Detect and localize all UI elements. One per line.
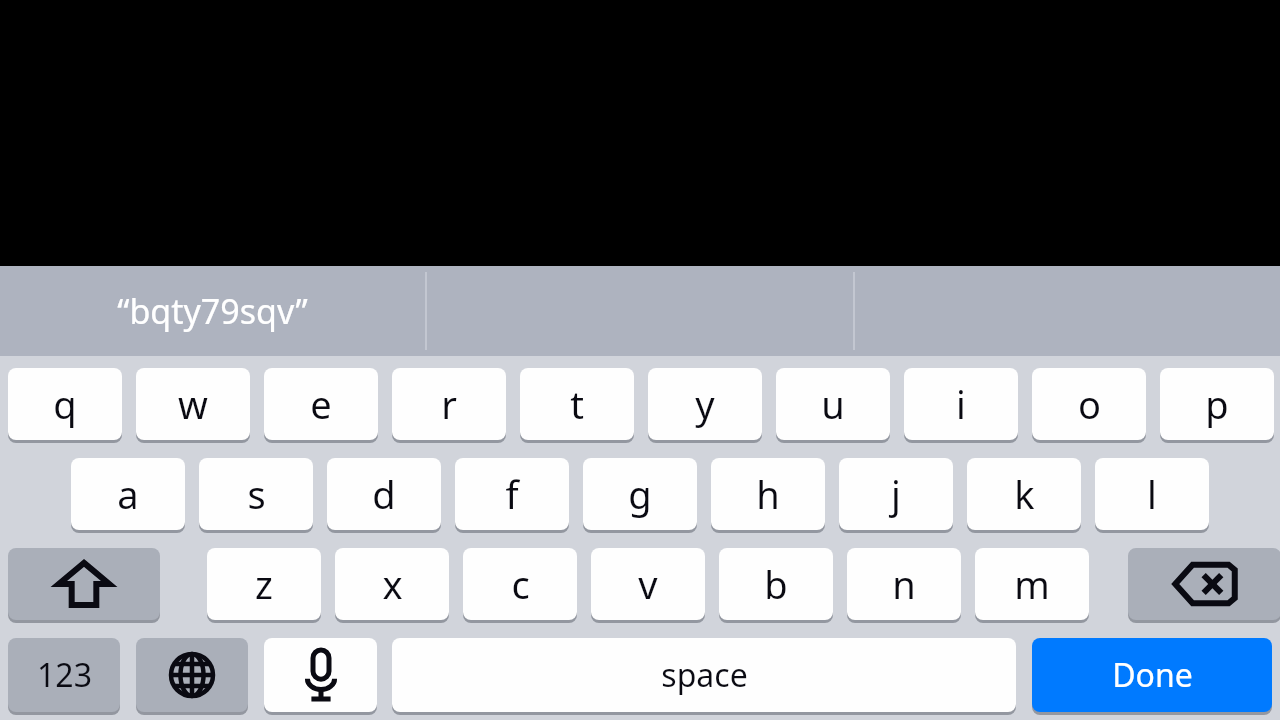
staticText: w [178, 378, 208, 430]
button[interactable]: r [392, 368, 506, 440]
button[interactable]: u [776, 368, 890, 440]
button[interactable]: space [392, 638, 1016, 712]
staticText: z [255, 558, 273, 610]
button[interactable]: s [199, 458, 313, 530]
staticText: u [821, 378, 845, 430]
button[interactable]: e [264, 368, 378, 440]
staticText: x [382, 558, 403, 610]
staticText: space [661, 653, 748, 697]
button[interactable]: v [591, 548, 705, 620]
button[interactable]: q [8, 368, 122, 440]
staticText: k [1014, 468, 1035, 520]
button[interactable]: k [967, 458, 1081, 530]
staticText: y [695, 378, 715, 430]
staticText: p [1205, 378, 1229, 430]
button[interactable]: j [839, 458, 953, 530]
staticText: 123 [37, 653, 92, 697]
button[interactable]: n [847, 548, 961, 620]
staticText: j [891, 468, 901, 520]
button[interactable]: f [455, 458, 569, 530]
button[interactable]: d [327, 458, 441, 530]
button[interactable]: l [1095, 458, 1209, 530]
button[interactable]: 123 [8, 638, 120, 712]
button[interactable]: x [335, 548, 449, 620]
staticText: f [505, 468, 519, 520]
staticText: l [1147, 468, 1157, 520]
button[interactable]: z [207, 548, 321, 620]
button[interactable]: a [71, 458, 185, 530]
staticText: e [310, 378, 332, 430]
button[interactable]: Change keyboard [136, 638, 248, 712]
button[interactable]: Backspace [1128, 548, 1280, 620]
staticText: m [1014, 558, 1050, 610]
button[interactable]: Done [1032, 638, 1272, 712]
staticText: r [441, 378, 457, 430]
staticText: d [372, 468, 396, 520]
button[interactable]: Shift [8, 548, 160, 620]
button[interactable]: i [904, 368, 1018, 440]
staticText: s [247, 468, 266, 520]
staticText: n [892, 558, 916, 610]
button[interactable]: b [719, 548, 833, 620]
staticText: c [511, 558, 530, 610]
button[interactable]: Dictation [264, 638, 377, 712]
button[interactable]: h [711, 458, 825, 530]
button[interactable]: c [463, 548, 577, 620]
staticText: o [1078, 378, 1101, 430]
button[interactable]: p [1160, 368, 1274, 440]
button[interactable]: y [648, 368, 762, 440]
staticText: v [638, 558, 658, 610]
staticText: h [756, 468, 780, 520]
staticText: g [628, 468, 652, 520]
staticText: i [956, 378, 966, 430]
button[interactable]: o [1032, 368, 1146, 440]
button[interactable]: m [975, 548, 1089, 620]
button[interactable]: w [136, 368, 250, 440]
staticText: q [53, 378, 77, 430]
staticText: “bqty79sqv” [117, 288, 308, 334]
staticText: t [570, 378, 584, 430]
staticText: b [764, 558, 788, 610]
button[interactable]: g [583, 458, 697, 530]
button[interactable]: “bqty79sqv” [0, 266, 425, 356]
staticText: Done [1112, 653, 1193, 697]
staticText: a [117, 468, 139, 520]
button[interactable]: t [520, 368, 634, 440]
